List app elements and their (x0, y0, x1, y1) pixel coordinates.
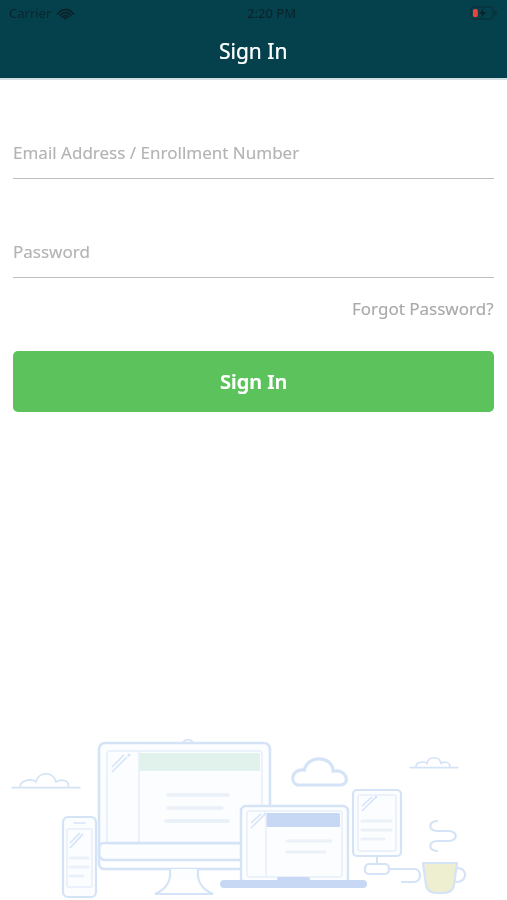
staticText: Sign In (220, 368, 288, 395)
other: Wi-Fi signal (58, 8, 73, 19)
staticText: Email Address / Enrollment Number (13, 141, 300, 164)
staticText: Carrier (9, 4, 52, 22)
button[interactable]: Password (13, 225, 494, 278)
button[interactable]: Forgot Password? (352, 292, 494, 325)
button[interactable]: Email Address / Enrollment Number (13, 126, 494, 179)
button[interactable]: Sign In (13, 351, 494, 412)
staticText: Forgot Password? (352, 297, 494, 320)
staticText: Password (13, 240, 90, 263)
staticText: 2:20 PM (247, 4, 297, 22)
other: Battery charging (471, 7, 498, 19)
staticText: Sign In (219, 37, 288, 66)
